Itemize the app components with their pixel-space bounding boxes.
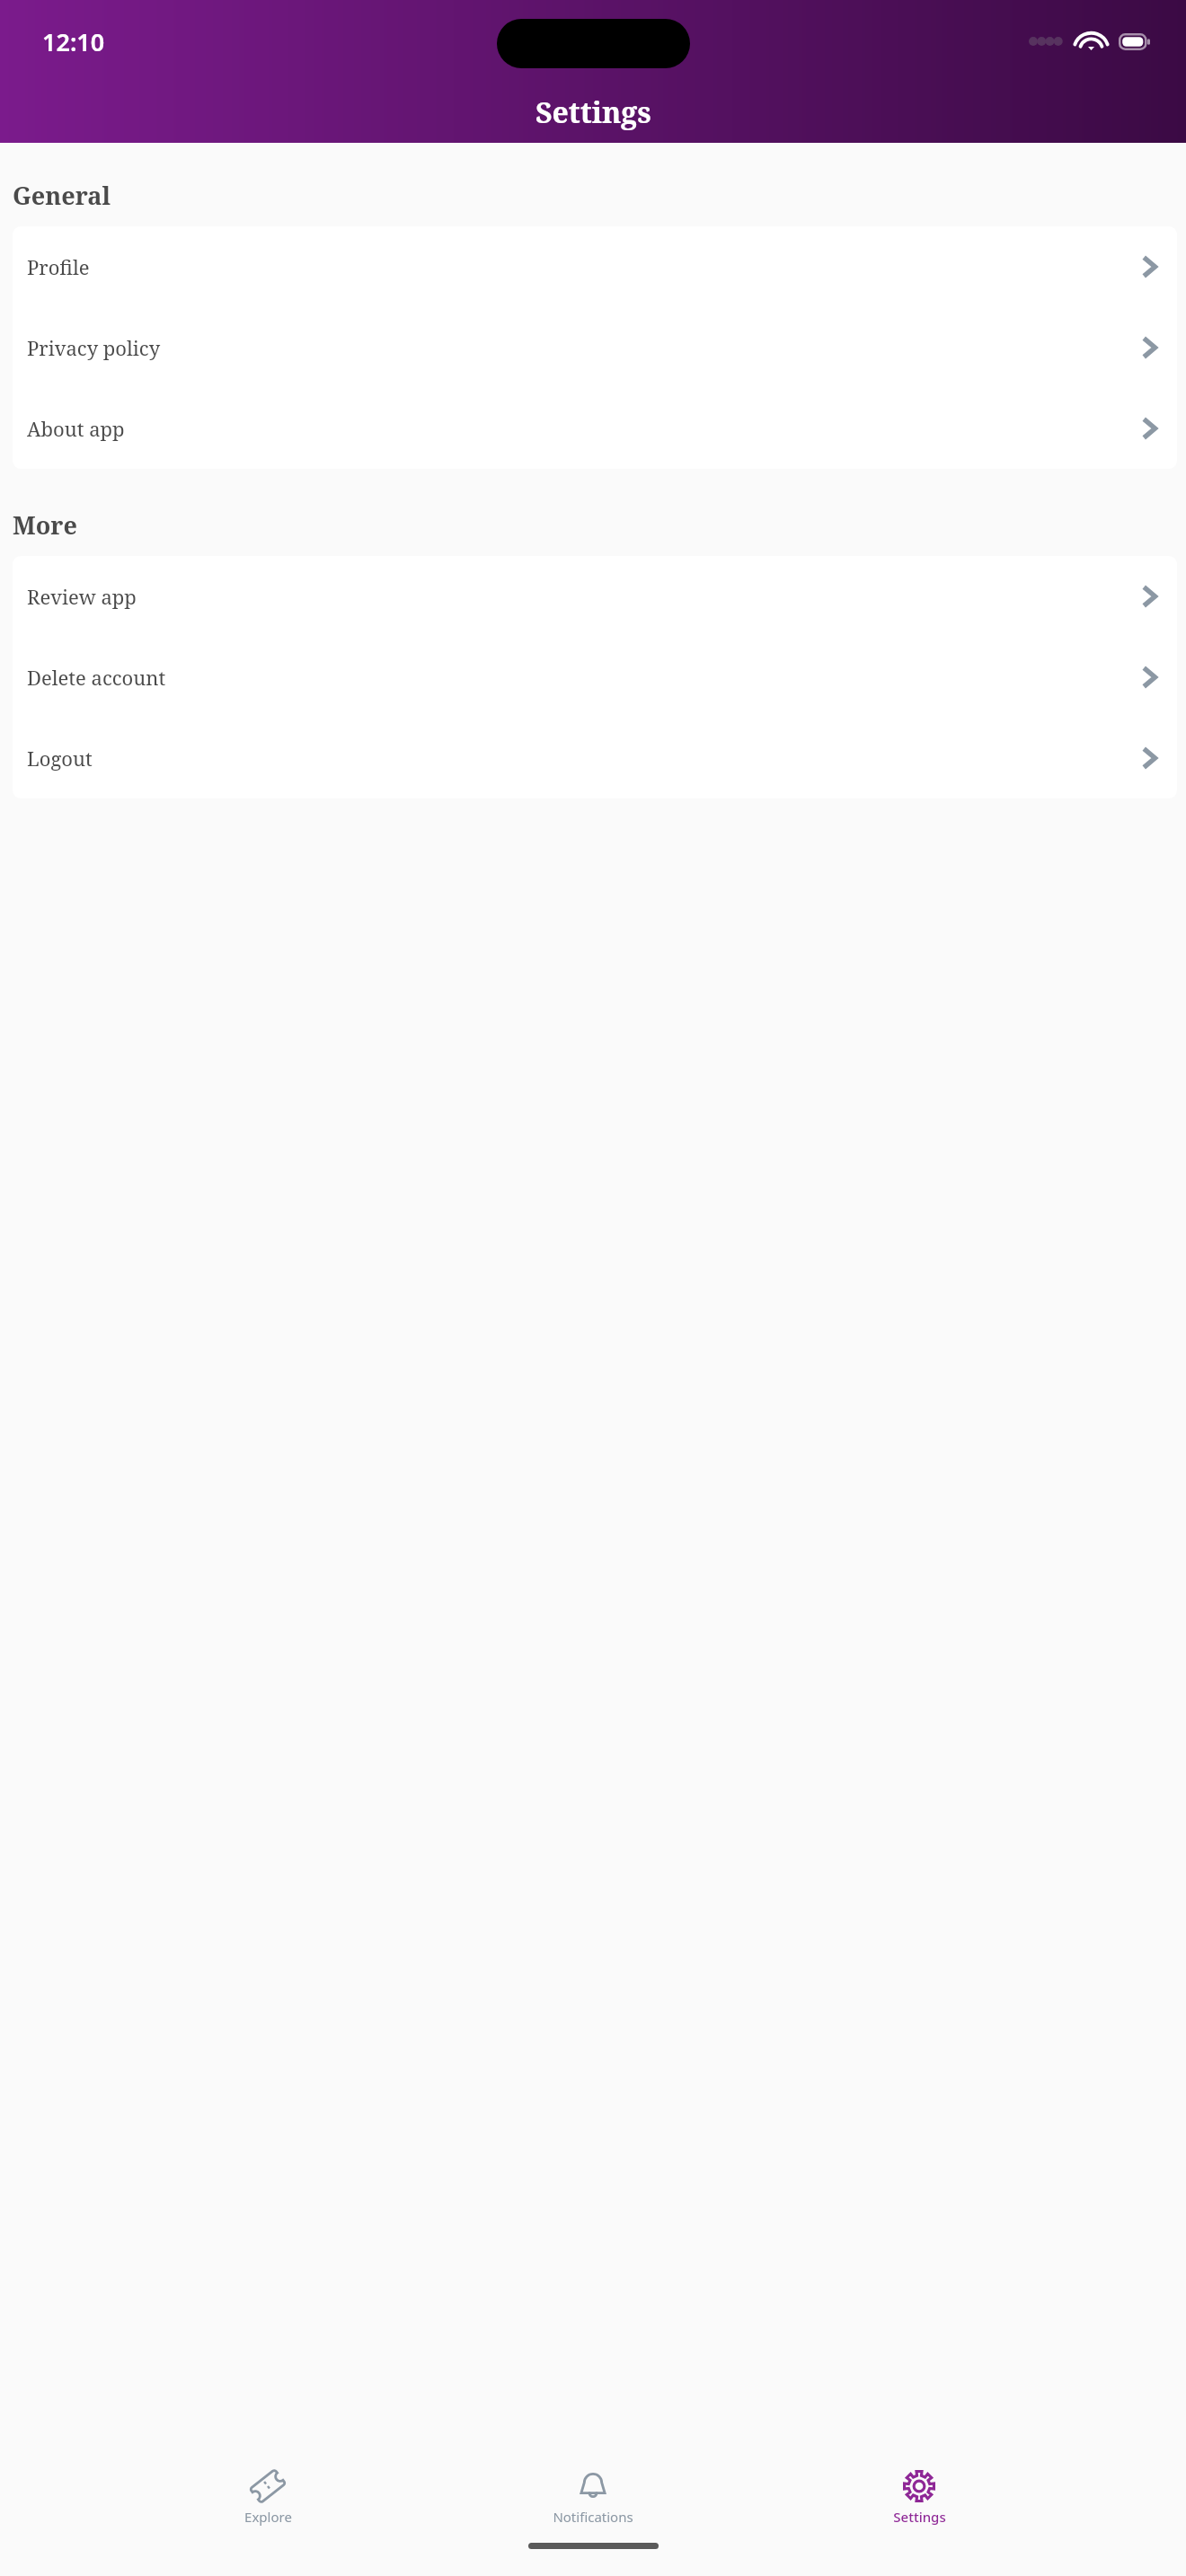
other: Notifications — [576, 2469, 610, 2503]
staticText: 12:10 — [42, 25, 105, 58]
staticText: More — [13, 508, 77, 542]
staticText: Review app — [27, 583, 137, 610]
other: Explore — [251, 2469, 285, 2503]
staticText: Notifications — [553, 2508, 633, 2526]
staticText: About app — [27, 415, 125, 442]
button[interactable]: Notifications — [535, 2466, 651, 2529]
staticText: Profile — [27, 253, 90, 280]
button[interactable]: Profile — [13, 226, 1177, 307]
button[interactable]: Logout — [13, 718, 1177, 798]
other: Settings — [902, 2469, 936, 2503]
button[interactable]: Review app — [13, 556, 1177, 637]
button[interactable]: Explore — [209, 2466, 326, 2529]
staticText: Settings — [893, 2508, 946, 2526]
button[interactable]: Privacy policy — [13, 307, 1177, 388]
staticText: Settings — [535, 93, 651, 132]
button[interactable]: About app — [13, 388, 1177, 469]
staticText: Logout — [27, 745, 93, 772]
button[interactable]: Delete account — [13, 637, 1177, 718]
staticText: Privacy policy — [27, 334, 161, 361]
staticText: Delete account — [27, 664, 166, 691]
button[interactable]: Settings — [861, 2466, 978, 2529]
staticText: Explore — [244, 2508, 292, 2526]
staticText: General — [13, 179, 111, 212]
